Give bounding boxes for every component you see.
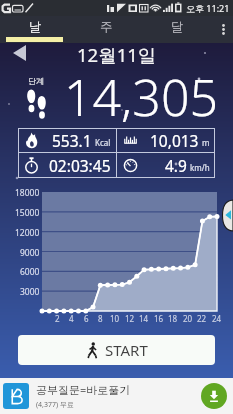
staticText: 12월11일: [77, 42, 157, 64]
staticText: 24: [212, 313, 222, 324]
staticText: 공부질문=바로풀기: [36, 382, 131, 397]
button[interactable]: 02:03:45: [18, 153, 116, 178]
staticText: 12: [125, 313, 135, 324]
button[interactable]: 달: [142, 16, 213, 43]
staticText: 12000: [15, 227, 40, 239]
staticText: 10: [110, 313, 120, 324]
staticText: 주: [100, 19, 113, 35]
staticText: 22: [197, 313, 207, 324]
staticText: 10,013: [150, 130, 199, 151]
staticText: START: [105, 340, 148, 360]
staticText: 2: [55, 313, 60, 324]
staticText: 9000: [20, 247, 40, 259]
button[interactable]: Download: [201, 383, 227, 409]
staticText: 달: [171, 19, 184, 35]
staticText: 20: [183, 313, 193, 324]
button[interactable]: More options: [213, 16, 233, 43]
staticText: 4: [69, 313, 74, 324]
button[interactable]: Open side panel: [222, 200, 233, 231]
staticText: 553.1: [52, 130, 92, 151]
staticText: 8: [98, 313, 103, 324]
staticText: 18: [168, 313, 178, 324]
button[interactable]: START: [18, 335, 215, 365]
button[interactable]: 10,013: [117, 128, 215, 152]
staticText: 단계: [28, 76, 44, 86]
button[interactable]: 553.1: [18, 128, 116, 152]
staticText: 02:03:45: [49, 155, 111, 176]
staticText: 18000: [15, 187, 40, 199]
staticText: 14,305: [64, 63, 218, 131]
staticText: 6000: [20, 266, 40, 278]
staticText: 15000: [15, 207, 40, 219]
staticText: (4,377) 무료: [36, 400, 74, 410]
button[interactable]: 공부질문=바로풀기: [0, 378, 233, 414]
staticText: 오후 11:21: [186, 2, 230, 14]
staticText: m: [202, 137, 210, 148]
staticText: 14: [139, 313, 149, 324]
staticText: 4.9: [165, 155, 187, 176]
button[interactable]: 4.9: [117, 153, 215, 178]
button[interactable]: 날: [0, 16, 71, 43]
staticText: 날: [29, 19, 42, 35]
staticText: 16: [154, 313, 164, 324]
staticText: 6: [84, 313, 89, 324]
staticText: Kcal: [95, 137, 111, 148]
staticText: 3000: [20, 286, 40, 298]
button[interactable]: 주: [71, 16, 142, 43]
button[interactable]: Previous day: [6, 42, 32, 64]
staticText: km/h: [190, 162, 210, 173]
